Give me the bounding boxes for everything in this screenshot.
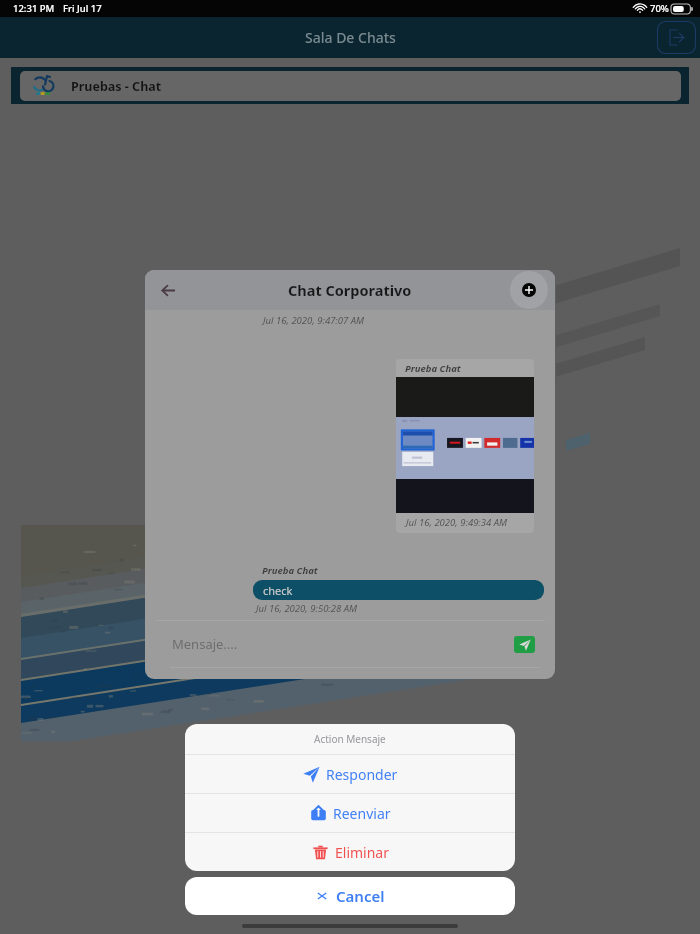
button[interactable]: Cancel bbox=[185, 877, 515, 915]
staticText: check bbox=[263, 583, 293, 598]
staticText: Mensaje.... bbox=[172, 635, 238, 653]
staticText: Prueba Chat bbox=[405, 362, 461, 375]
staticText: Responder bbox=[326, 765, 398, 784]
staticText: Cancel bbox=[336, 886, 385, 906]
staticText: Eliminar bbox=[335, 843, 389, 862]
staticText: 12:31 PM bbox=[13, 2, 55, 15]
button[interactable]: Logout bbox=[657, 21, 696, 54]
staticText: 70% bbox=[650, 2, 669, 15]
staticText: Action Mensaje bbox=[314, 732, 386, 746]
button[interactable]: Pruebas - Chat bbox=[11, 67, 689, 104]
staticText: Jul 16, 2020, 9:47:07 AM bbox=[263, 314, 365, 327]
button[interactable]: Eliminar bbox=[185, 833, 515, 871]
button[interactable]: Responder bbox=[185, 755, 515, 793]
staticText: Chat Corporativo bbox=[288, 280, 412, 300]
staticText: Sala De Chats bbox=[305, 28, 396, 47]
staticText: Fri Jul 17 bbox=[63, 2, 102, 15]
button[interactable]: Add bbox=[510, 271, 548, 309]
staticText: Pruebas - Chat bbox=[71, 78, 162, 95]
staticText: Reenviar bbox=[333, 804, 391, 823]
button[interactable]: Send bbox=[514, 636, 535, 653]
staticText: Prueba Chat bbox=[262, 564, 318, 577]
staticText: Jul 16, 2020, 9:50:28 AM bbox=[256, 602, 358, 615]
button[interactable]: Back bbox=[153, 275, 183, 305]
staticText: Jul 16, 2020, 9:49:34 AM bbox=[406, 516, 508, 529]
button[interactable]: Reenviar bbox=[185, 794, 515, 832]
